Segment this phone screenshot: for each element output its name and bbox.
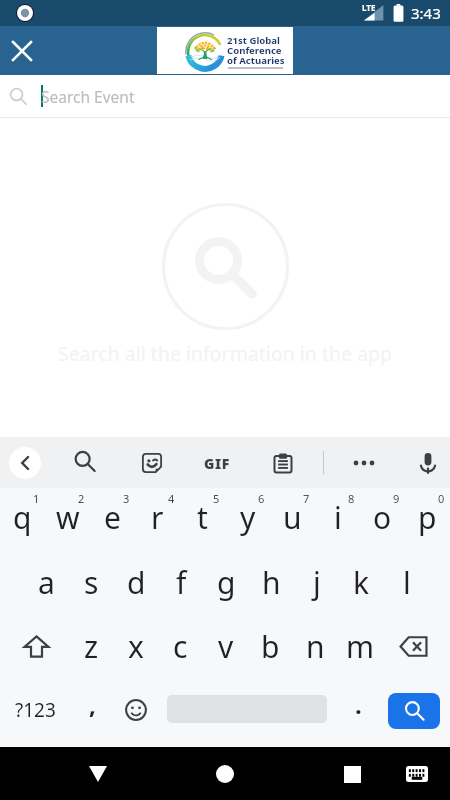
button[interactable]: Period: [340, 682, 376, 738]
staticText: d: [127, 562, 146, 603]
staticText: 6: [258, 491, 265, 506]
staticText: j: [313, 562, 321, 603]
button[interactable]: l: [384, 551, 429, 614]
button[interactable]: y: [225, 485, 270, 550]
button[interactable]: Keyboard: [395, 752, 439, 796]
button[interactable]: v: [203, 615, 248, 678]
staticText: f: [176, 562, 187, 603]
button[interactable]: q: [0, 485, 45, 550]
staticText: w: [56, 497, 80, 538]
button[interactable]: f: [159, 551, 204, 614]
staticText: Search all the information in the app: [58, 340, 393, 367]
button[interactable]: Back: [9, 447, 41, 479]
button[interactable]: More options: [345, 444, 383, 482]
staticText: ,: [89, 688, 96, 721]
button[interactable]: p: [405, 485, 450, 550]
staticText: 1: [33, 491, 40, 506]
button[interactable]: Close: [0, 29, 44, 73]
staticText: 21st Global: [227, 34, 280, 47]
staticText: c: [173, 626, 188, 667]
button[interactable]: e: [90, 485, 135, 550]
button[interactable]: m: [338, 615, 383, 678]
staticText: z: [84, 626, 99, 667]
button[interactable]: h: [249, 551, 294, 614]
staticText: ?123: [15, 697, 56, 723]
button[interactable]: Shift: [0, 615, 69, 678]
staticText: 8: [348, 491, 355, 506]
staticText: b: [261, 626, 280, 667]
button[interactable]: w: [45, 485, 90, 550]
staticText: y: [240, 497, 256, 538]
staticText: u: [283, 497, 302, 538]
button[interactable]: c: [158, 615, 203, 678]
staticText: r: [151, 497, 164, 538]
staticText: .: [355, 688, 362, 721]
button[interactable]: k: [339, 551, 384, 614]
staticText: 0: [438, 491, 445, 506]
button[interactable]: x: [113, 615, 158, 678]
staticText: GIF: [204, 454, 230, 473]
button[interactable]: g: [204, 551, 249, 614]
staticText: 4: [168, 491, 175, 506]
button[interactable]: Voice input: [409, 444, 447, 482]
button[interactable]: n: [293, 615, 338, 678]
staticText: Search Event: [41, 86, 135, 107]
button[interactable]: s: [69, 551, 114, 614]
staticText: v: [218, 626, 234, 667]
staticText: p: [418, 497, 437, 538]
staticText: 5: [213, 491, 220, 506]
button[interactable]: t: [180, 485, 225, 550]
button[interactable]: d: [114, 551, 159, 614]
staticText: of Actuaries: [227, 54, 285, 67]
staticText: LTE: [362, 2, 376, 13]
button[interactable]: r: [135, 485, 180, 550]
button[interactable]: Backspace: [383, 615, 450, 678]
button[interactable]: Search: [67, 444, 105, 482]
button[interactable]: z: [69, 615, 113, 678]
button[interactable]: j: [294, 551, 339, 614]
staticText: 9: [393, 491, 400, 506]
button[interactable]: Home: [203, 752, 247, 796]
button[interactable]: Search: [388, 693, 440, 729]
staticText: o: [373, 497, 392, 538]
button[interactable]: i: [315, 485, 360, 550]
button[interactable]: b: [248, 615, 293, 678]
staticText: s: [84, 562, 99, 603]
button[interactable]: u: [270, 485, 315, 550]
staticText: 2: [78, 491, 85, 506]
button[interactable]: Back: [76, 752, 120, 796]
staticText: i: [334, 497, 342, 538]
staticText: h: [262, 562, 281, 603]
staticText: m: [346, 626, 375, 667]
button[interactable]: o: [360, 485, 405, 550]
button[interactable]: GIF: [198, 444, 236, 482]
button[interactable]: Comma: [72, 682, 112, 738]
button[interactable]: a: [24, 551, 69, 614]
staticText: Conference: [227, 44, 282, 57]
staticText: g: [217, 562, 236, 603]
button[interactable]: ?123: [7, 682, 63, 738]
button[interactable]: Clipboard: [264, 444, 302, 482]
button[interactable]: Recent apps: [330, 752, 374, 796]
staticText: 3:43: [411, 3, 441, 23]
button[interactable]: Stickers: [133, 444, 171, 482]
staticText: x: [128, 626, 144, 667]
staticText: q: [13, 497, 32, 538]
staticText: e: [104, 497, 121, 538]
staticText: t: [197, 497, 208, 538]
staticText: l: [403, 562, 411, 603]
staticText: n: [306, 626, 325, 667]
staticText: k: [353, 562, 370, 603]
staticText: 3: [123, 491, 130, 506]
staticText: 7: [303, 491, 310, 506]
button[interactable]: Emoji: [116, 682, 156, 738]
staticText: a: [38, 562, 55, 603]
